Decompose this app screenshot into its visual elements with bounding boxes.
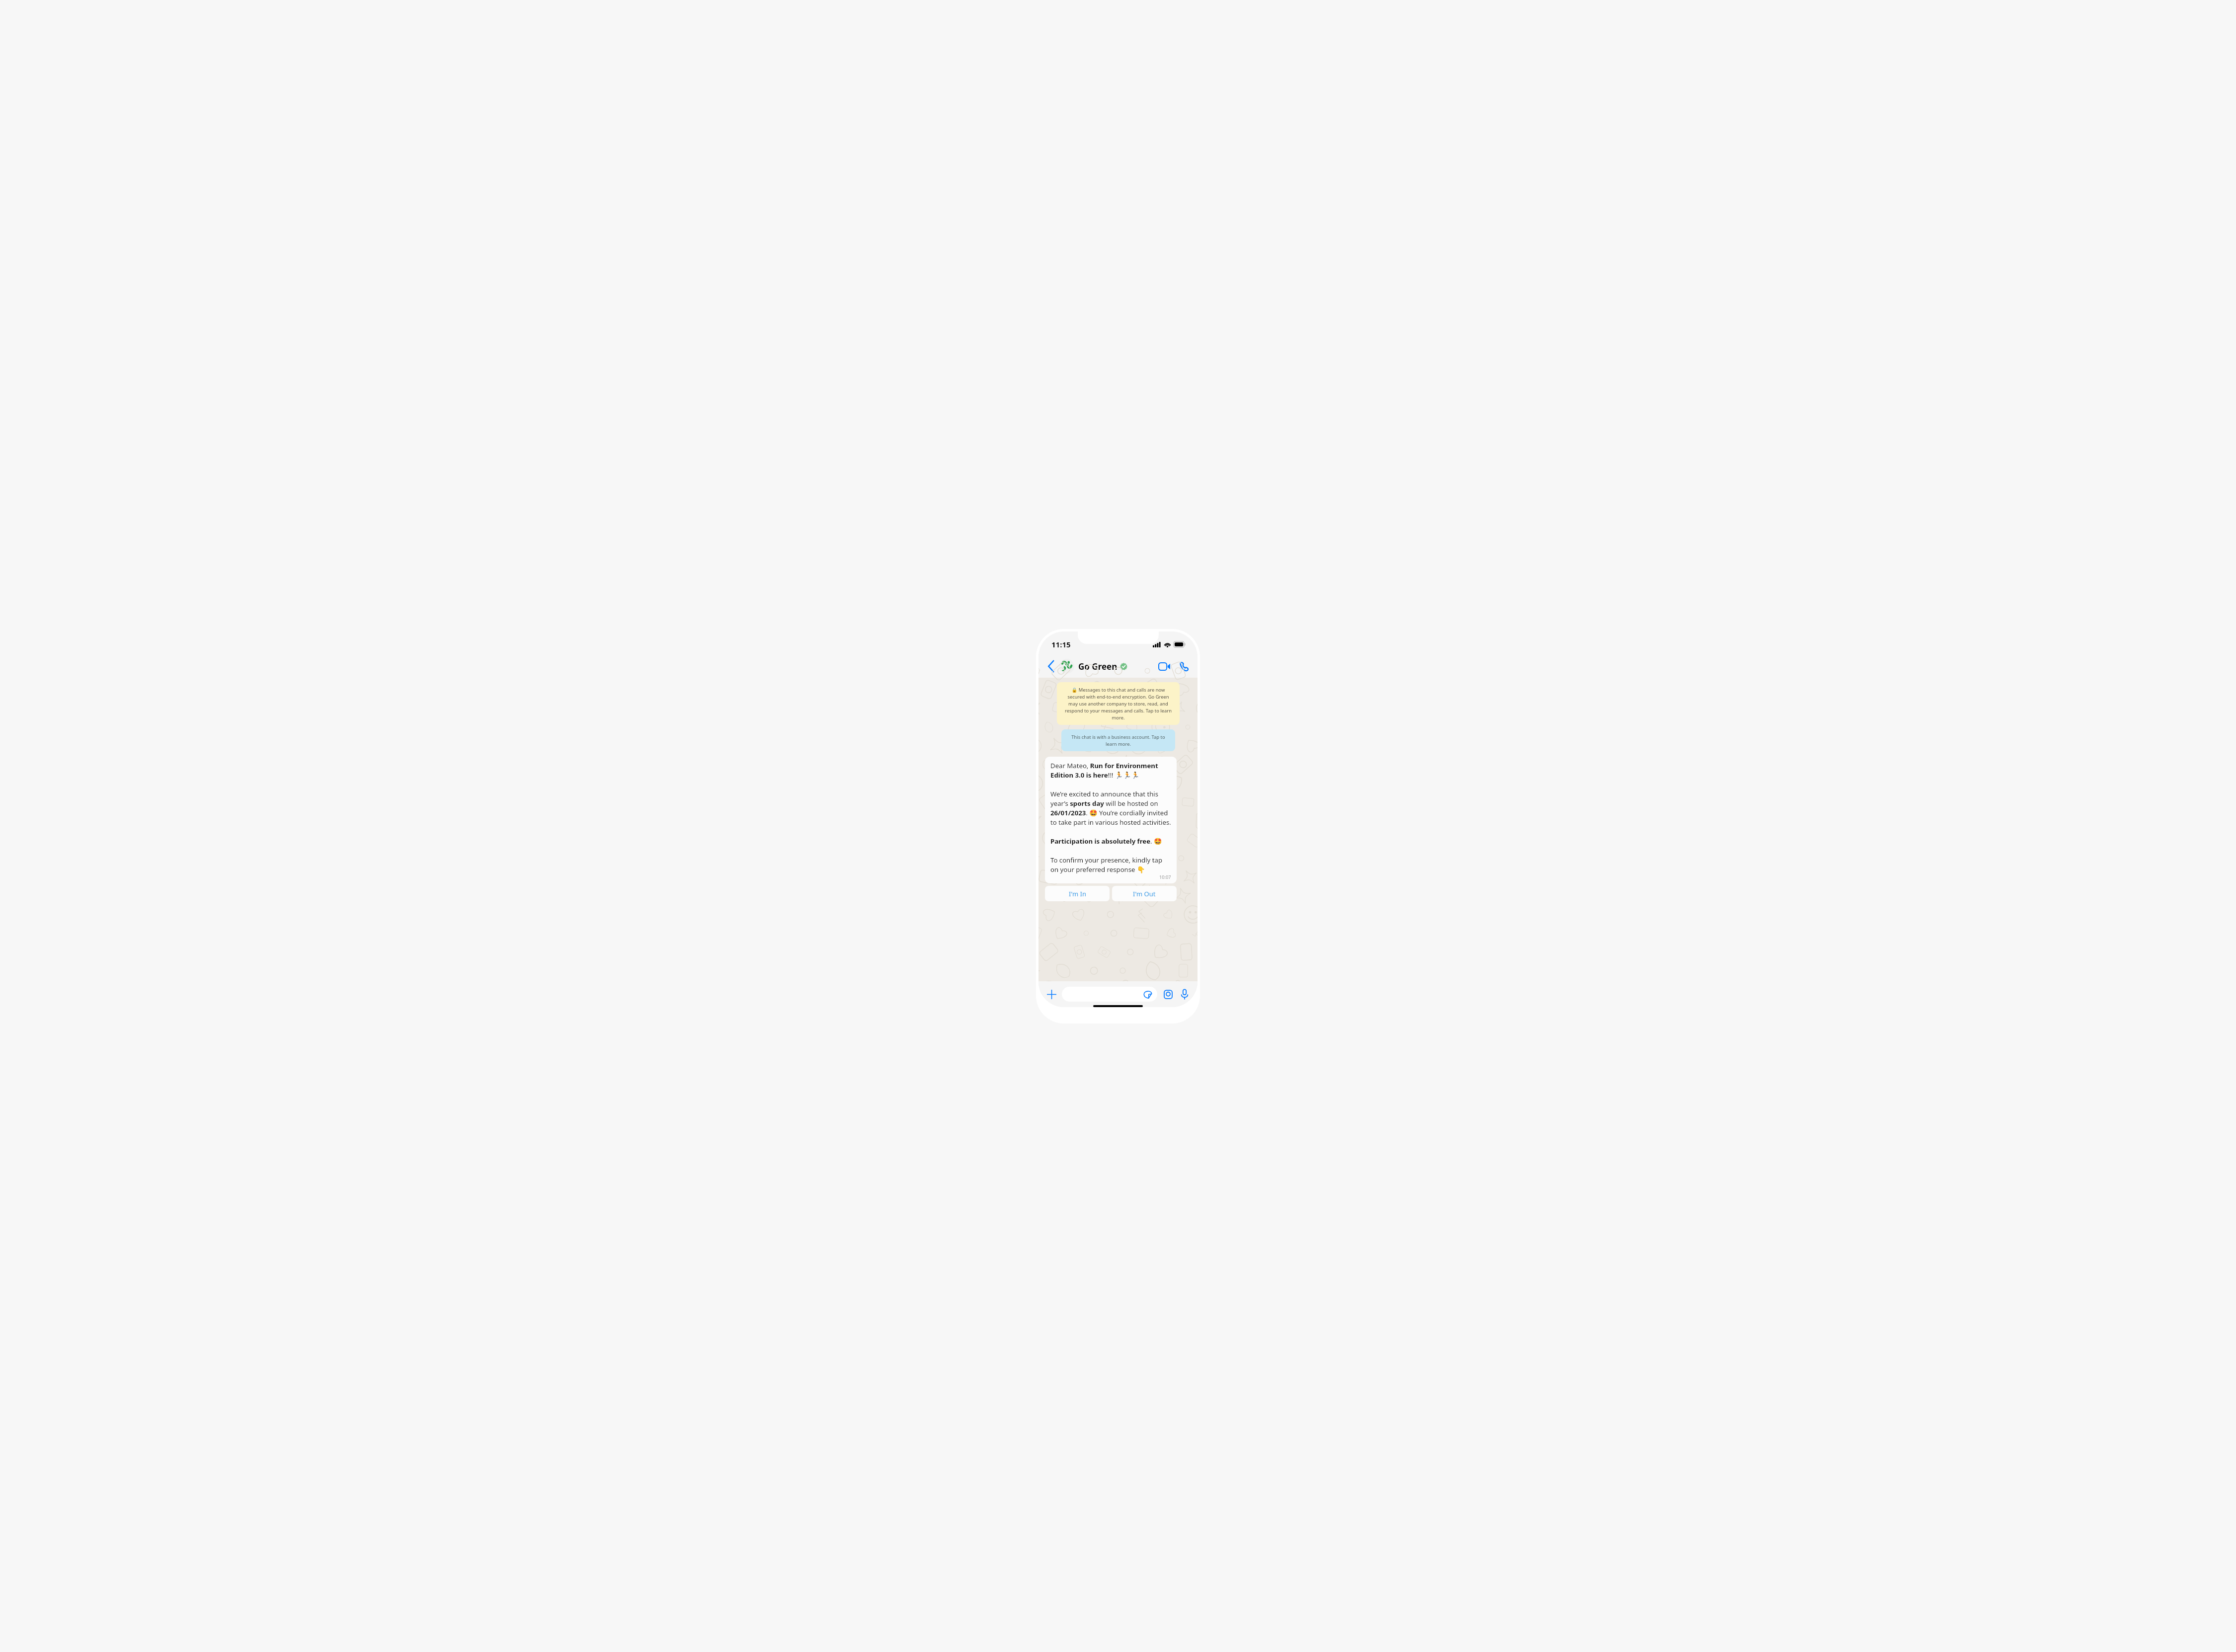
button[interactable]: This chat is with a business account. Ta…	[1061, 729, 1175, 751]
staticText: I'm In	[1069, 889, 1086, 898]
staticText: 🔒 Messages to this chat and calls are no…	[1063, 687, 1174, 720]
button[interactable]: Back	[1043, 659, 1058, 674]
staticText: Dear Mateo, Run for Environment Edition …	[1050, 761, 1171, 874]
button[interactable]: Video call	[1156, 658, 1173, 675]
button[interactable]: Voice message	[1177, 987, 1192, 1002]
staticText: Go Green	[1078, 661, 1118, 672]
button[interactable]: 🔒 Messages to this chat and calls are no…	[1057, 682, 1180, 725]
staticText: 11:15	[1051, 639, 1071, 649]
button[interactable]: Dear Mateo, Run for Environment Edition …	[1045, 757, 1177, 883]
button[interactable]: Voice call	[1176, 658, 1193, 675]
button[interactable]: Go Green	[1059, 659, 1156, 674]
staticText: 10:07	[1159, 874, 1171, 880]
staticText: I'm Out	[1133, 889, 1156, 898]
button[interactable]: I'm In	[1045, 886, 1110, 901]
button[interactable]: Camera	[1161, 987, 1176, 1002]
staticText: This chat is with a business account. Ta…	[1067, 734, 1169, 747]
button[interactable]: I'm Out	[1112, 886, 1177, 901]
button[interactable]: Stickers	[1142, 988, 1154, 1000]
button[interactable]: Attach	[1044, 987, 1059, 1002]
button[interactable]: Stickers	[1062, 987, 1157, 1002]
